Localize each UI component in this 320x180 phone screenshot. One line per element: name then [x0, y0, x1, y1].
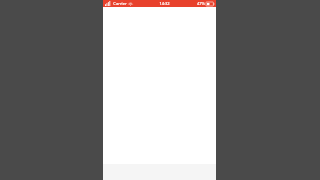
other: Wi-Fi [128, 1, 133, 6]
other: Battery [206, 2, 214, 6]
other: Signal strength [105, 1, 112, 6]
staticText: Carrier [113, 1, 127, 6]
staticText: 47% [197, 1, 205, 6]
staticText: 14:32 [159, 1, 170, 6]
